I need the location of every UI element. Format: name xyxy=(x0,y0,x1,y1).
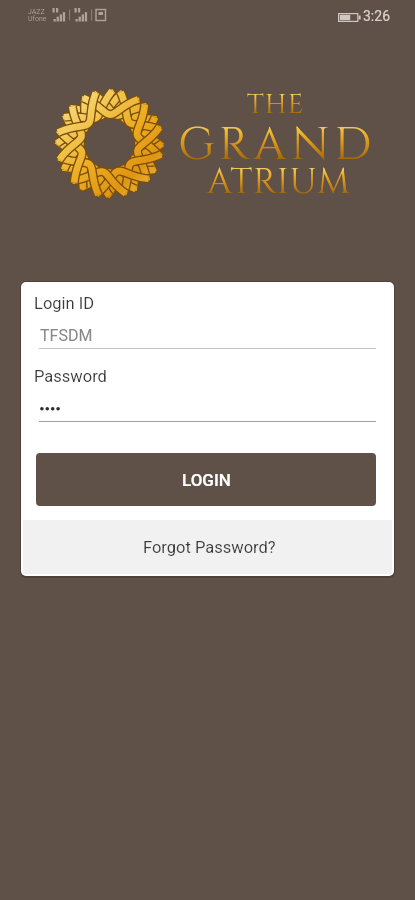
staticText: GRAND xyxy=(178,114,377,176)
staticText: Login ID xyxy=(34,294,95,313)
staticText: THE xyxy=(247,87,305,123)
staticText: TFSDM xyxy=(40,326,93,345)
staticText: JAZZ xyxy=(28,8,45,16)
button[interactable]: LOGIN xyxy=(36,453,376,506)
staticText: Forgot Password? xyxy=(143,538,276,557)
staticText: 3:26 xyxy=(363,8,390,24)
staticText: ATRIUM xyxy=(207,159,351,206)
button[interactable]: Login ID xyxy=(34,290,379,350)
button[interactable]: Password xyxy=(34,363,379,423)
staticText: LOGIN xyxy=(182,470,231,490)
staticText: Ufone xyxy=(28,15,47,23)
other: The Grand Atrium logo xyxy=(52,86,167,201)
staticText: Password xyxy=(34,367,107,386)
button[interactable]: Forgot Password? xyxy=(23,520,392,574)
